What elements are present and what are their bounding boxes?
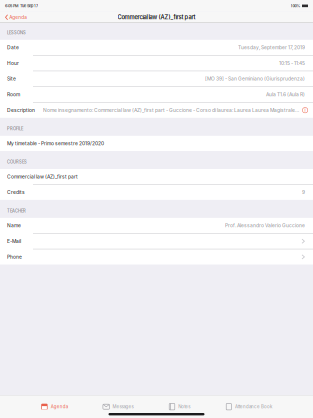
staticText: Tuesday, September 17, 2019 xyxy=(238,44,305,50)
staticText: Agenda xyxy=(51,404,68,409)
button[interactable]: More info xyxy=(302,107,308,113)
staticText: Site xyxy=(7,76,16,82)
staticText: Aula T1.6 (Aula R) xyxy=(266,91,305,97)
staticText: LESSONS xyxy=(7,30,26,35)
staticText: Credits xyxy=(7,189,25,195)
button[interactable]: Attendance Book xyxy=(225,400,272,414)
button[interactable]: Date xyxy=(0,40,313,55)
button[interactable]: E-Mail xyxy=(0,234,313,249)
staticText: My timetable - Primo semestre 2019/2020 xyxy=(7,140,104,146)
button[interactable]: Name xyxy=(0,218,313,233)
staticText: 100% xyxy=(290,4,300,8)
staticText: Agenda xyxy=(9,14,27,20)
staticText: PROFILE xyxy=(7,126,23,131)
staticText: Nome insegnamento: Commercial law (AZ)_f… xyxy=(43,107,299,113)
button[interactable]: Credits xyxy=(0,185,313,200)
button[interactable]: Phone xyxy=(0,249,313,264)
button[interactable]: Notes xyxy=(168,400,190,414)
staticText: Messages xyxy=(112,404,133,409)
button[interactable]: Agenda xyxy=(41,400,68,414)
staticText: Name xyxy=(7,222,21,228)
button[interactable]: Agenda xyxy=(0,12,31,23)
staticText: [MO 39] - San Geminiano (Giurisprudenza) xyxy=(205,76,305,82)
staticText: Room xyxy=(7,91,20,97)
button[interactable]: Site xyxy=(0,71,313,86)
staticText: Prof. Alessandro Valerio Guccione xyxy=(225,222,305,228)
button[interactable]: Hour xyxy=(0,55,313,71)
staticText: COURSES xyxy=(7,159,27,164)
staticText: Hour xyxy=(7,60,19,66)
staticText: Attendance Book xyxy=(235,404,272,409)
staticText: Description xyxy=(7,107,35,113)
staticText: E-Mail xyxy=(7,238,21,244)
staticText: 6:05 PM xyxy=(5,4,18,8)
staticText: 9 xyxy=(302,189,305,195)
staticText: TEACHER xyxy=(7,208,26,213)
staticText: 10:15 - 11:45 xyxy=(279,60,305,66)
button[interactable]: Messages xyxy=(103,400,133,414)
staticText: Commercial law (AZ)_first part xyxy=(117,14,195,21)
staticText: i xyxy=(305,107,306,113)
button[interactable]: My timetable - Primo semestre 2019/2020 xyxy=(0,136,313,151)
button[interactable]: Commercial law (AZ)_first part xyxy=(0,169,313,184)
staticText: Commercial law (AZ)_first part xyxy=(7,174,78,180)
button[interactable]: Room xyxy=(0,87,313,102)
staticText: Tue Sep 17 xyxy=(18,4,38,8)
staticText: Date xyxy=(7,44,19,50)
staticText: Notes xyxy=(178,404,190,409)
staticText: Phone xyxy=(7,254,22,260)
